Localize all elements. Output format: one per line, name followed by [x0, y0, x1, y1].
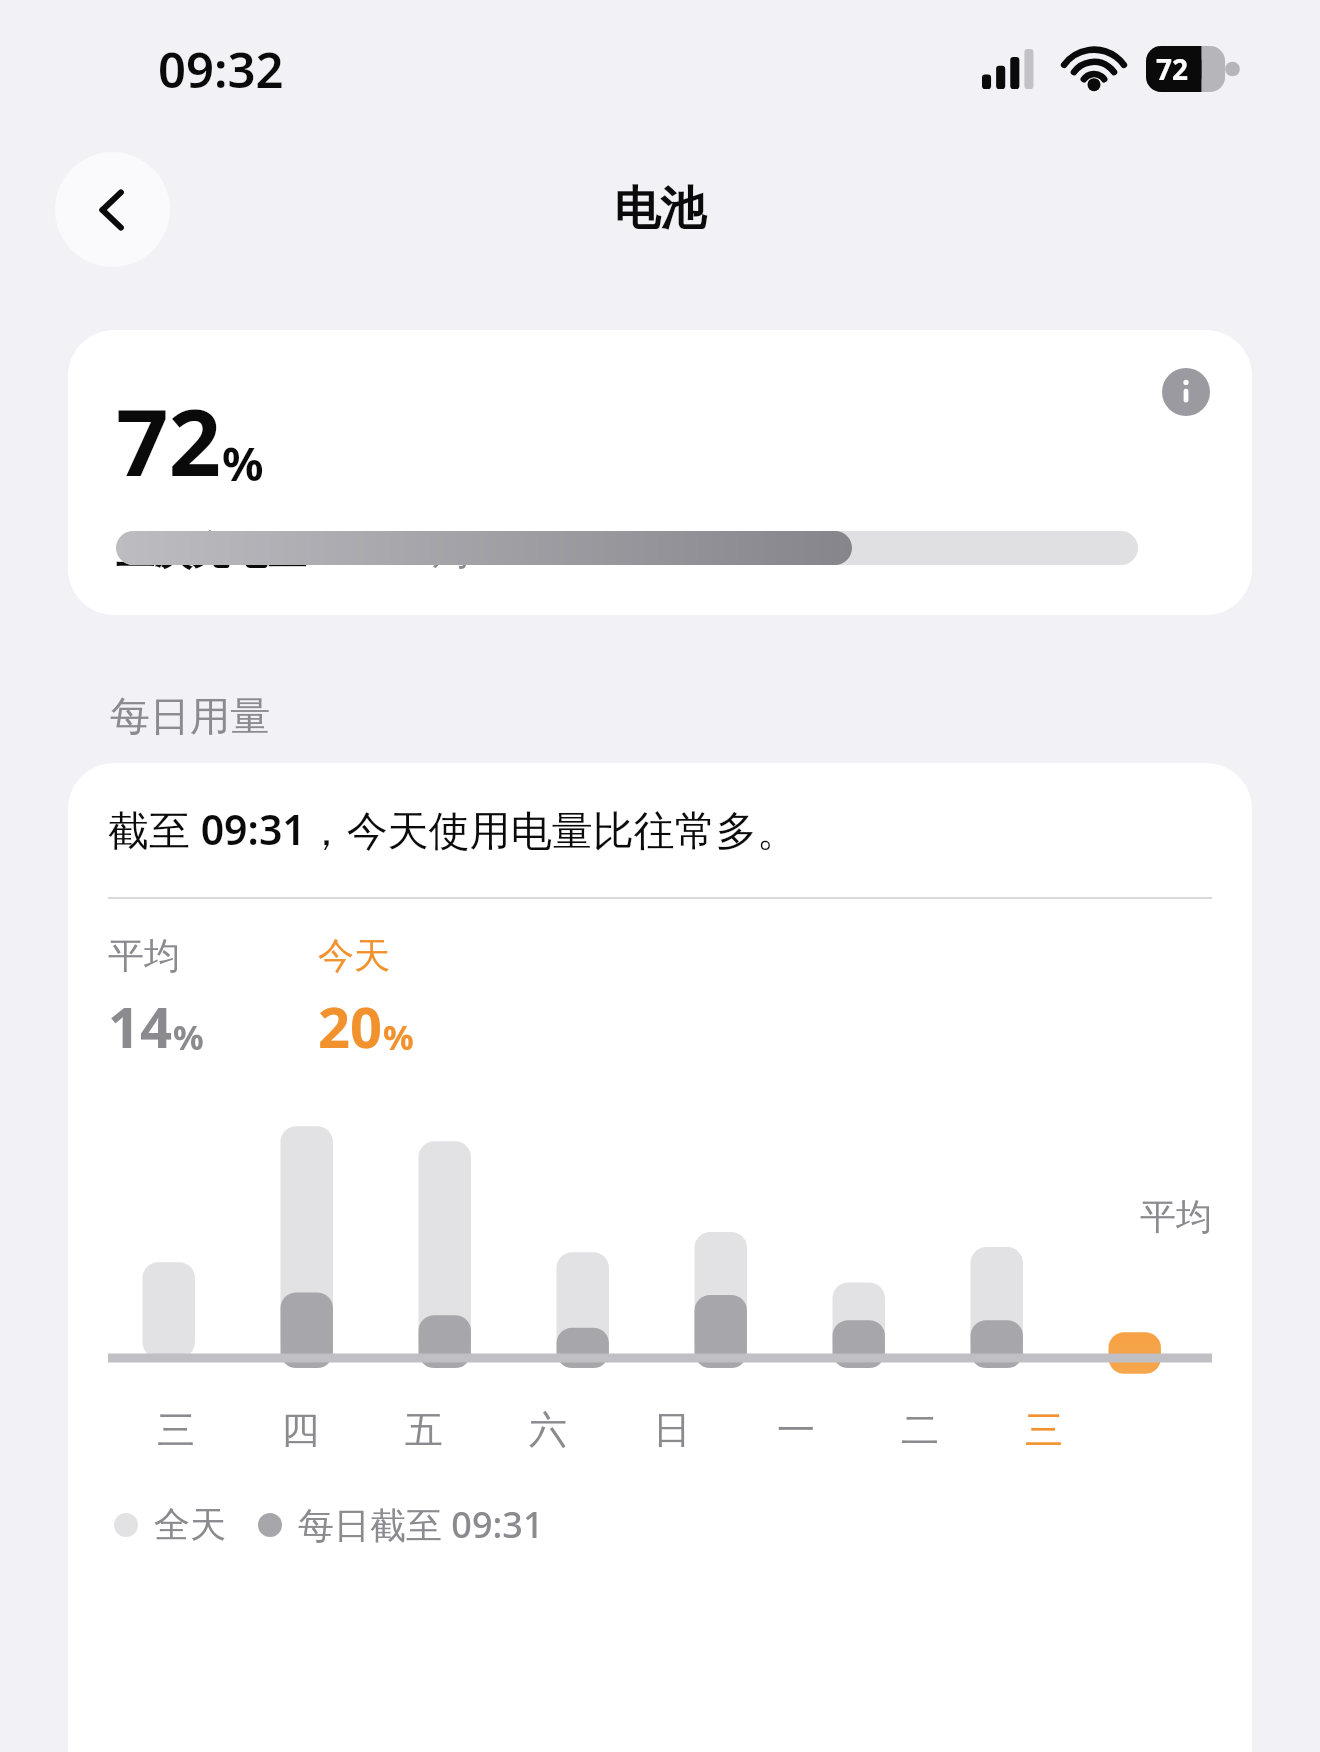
staticText: 四: [281, 1406, 319, 1454]
staticText: 每日用量: [110, 691, 270, 741]
button[interactable]: 返回: [55, 152, 170, 267]
staticText: 20: [318, 988, 383, 1064]
staticText: 72: [1156, 50, 1189, 88]
button[interactable]: 72: [68, 330, 1252, 615]
staticText: 五: [405, 1406, 443, 1454]
staticText: 每日截至 09:31: [298, 1500, 544, 1549]
staticText: 二: [901, 1406, 939, 1454]
button[interactable]: 信息: [1162, 368, 1210, 416]
staticText: 六: [529, 1406, 567, 1454]
staticText: 三: [1025, 1406, 1063, 1454]
staticText: %: [173, 1014, 204, 1060]
staticText: 日: [653, 1406, 691, 1454]
staticText: %: [383, 1014, 414, 1060]
staticText: 72: [116, 378, 222, 503]
staticText: 14: [108, 988, 173, 1064]
staticText: %: [222, 432, 264, 495]
staticText: 一: [777, 1406, 815, 1454]
staticText: 今天: [318, 933, 390, 978]
staticText: 上次充电至92%： 周二 23:02: [116, 523, 615, 575]
staticText: 电池: [614, 180, 706, 238]
staticText: 平均: [108, 933, 180, 978]
staticText: 三: [157, 1406, 195, 1454]
staticText: 全天: [154, 1502, 226, 1547]
staticText: 截至 09:31，今天使用电量比往常多。: [108, 801, 798, 857]
staticText: 平均: [1140, 1194, 1212, 1239]
staticText: 09:32: [158, 36, 284, 103]
